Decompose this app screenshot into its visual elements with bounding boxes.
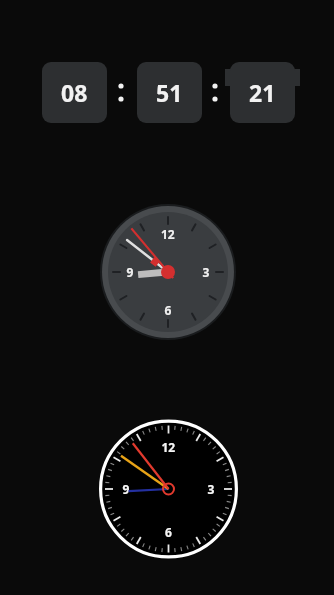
button[interactable]: Analog clock, dark face [0, 0, 334, 595]
button[interactable]: Flip clock showing 08 51 21 [0, 0, 334, 595]
button[interactable]: Analog clock, ring face [0, 0, 334, 595]
